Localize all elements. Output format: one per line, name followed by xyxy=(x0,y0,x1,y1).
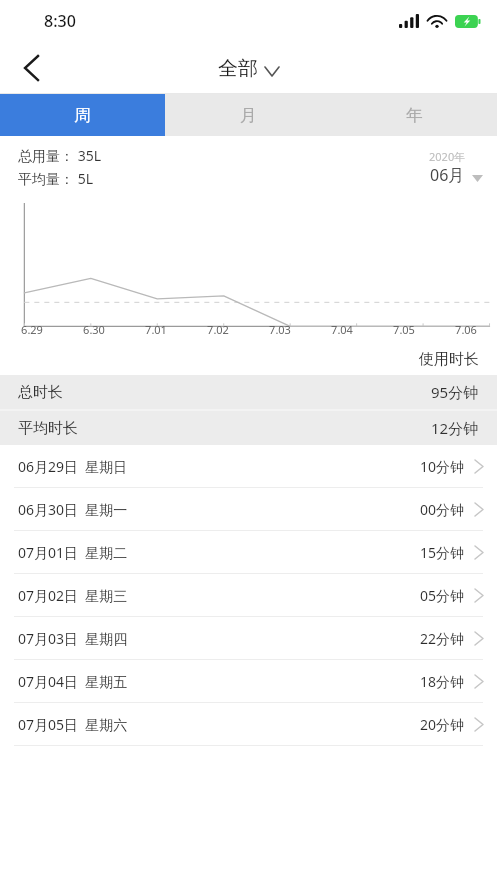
button[interactable]: 全部 xyxy=(218,56,279,81)
staticText: 使用时长 xyxy=(419,350,479,369)
staticText: 6.29 xyxy=(21,322,43,337)
staticText: 7.06 xyxy=(455,322,477,337)
staticText: 7.03 xyxy=(269,322,291,337)
staticText: 7.04 xyxy=(331,322,353,337)
staticText: 周 xyxy=(74,105,91,126)
staticText: 12分钟 xyxy=(431,418,479,438)
staticText: 8:30 xyxy=(44,10,76,32)
staticText: 总用量： 35L xyxy=(18,146,101,165)
staticText: 总时长 xyxy=(18,383,63,402)
button[interactable]: 月 xyxy=(165,94,331,136)
button[interactable]: 平均时长 xyxy=(0,411,497,445)
staticText: 10分钟 xyxy=(420,457,465,476)
staticText: 07月04日 星期五 xyxy=(18,672,128,691)
staticText: 20分钟 xyxy=(420,715,465,734)
staticText: 07月01日 星期二 xyxy=(18,543,128,562)
staticText: 05分钟 xyxy=(420,586,465,605)
staticText: 95分钟 xyxy=(431,382,479,402)
button[interactable]: 07月05日 星期六 xyxy=(0,703,497,745)
button[interactable]: Back xyxy=(0,42,62,94)
staticText: 月 xyxy=(240,105,257,126)
staticText: 平均时长 xyxy=(18,419,78,438)
staticText: 7.05 xyxy=(393,322,415,337)
staticText: 年 xyxy=(406,105,423,126)
button[interactable]: 07月04日 星期五 xyxy=(0,660,497,702)
staticText: 06月29日 星期日 xyxy=(18,457,128,476)
staticText: 全部 xyxy=(218,56,258,81)
button[interactable]: 07月02日 星期三 xyxy=(0,574,497,616)
staticText: 18分钟 xyxy=(420,672,465,691)
button[interactable]: 年 xyxy=(331,94,497,136)
staticText: 07月02日 星期三 xyxy=(18,586,128,605)
staticText: 2020年 xyxy=(429,149,466,164)
staticText: 00分钟 xyxy=(420,500,465,519)
staticText: 15分钟 xyxy=(420,543,465,562)
staticText: 7.01 xyxy=(145,322,167,337)
button[interactable]: 06月29日 星期日 xyxy=(0,445,497,487)
button[interactable]: 06月30日 星期一 xyxy=(0,488,497,530)
button[interactable]: 2020年 xyxy=(429,149,483,186)
staticText: 06月 xyxy=(430,164,465,186)
button[interactable]: 07月03日 星期四 xyxy=(0,617,497,659)
staticText: 06月30日 星期一 xyxy=(18,500,128,519)
staticText: 7.02 xyxy=(207,322,229,337)
button[interactable]: 07月01日 星期二 xyxy=(0,531,497,573)
button[interactable]: 总时长 xyxy=(0,375,497,409)
button[interactable]: 周 xyxy=(0,94,165,136)
staticText: 22分钟 xyxy=(420,629,465,648)
staticText: 07月03日 星期四 xyxy=(18,629,128,648)
staticText: 平均量： 5L xyxy=(18,169,93,188)
staticText: 07月05日 星期六 xyxy=(18,715,128,734)
staticText: 6.30 xyxy=(83,322,105,337)
